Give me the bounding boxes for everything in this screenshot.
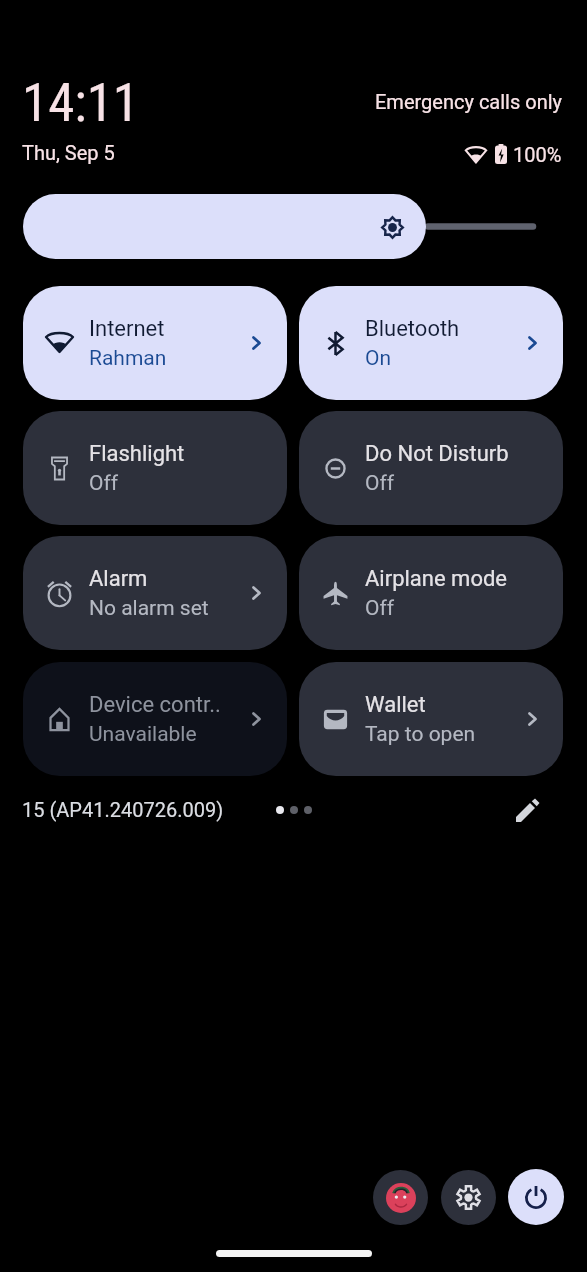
button[interactable]: Do Not Disturb bbox=[299, 411, 563, 525]
staticText: Flashlight bbox=[89, 441, 267, 467]
staticText: Off bbox=[365, 471, 543, 496]
button[interactable]: Brightness bbox=[23, 194, 426, 259]
button[interactable]: Airplane mode bbox=[299, 536, 563, 650]
staticText: Thu, Sep 5 bbox=[22, 141, 115, 164]
button[interactable]: User profile bbox=[373, 1170, 428, 1225]
button[interactable]: Settings bbox=[441, 1170, 496, 1225]
staticText: Rahman bbox=[89, 346, 267, 371]
staticText: 100% bbox=[513, 143, 562, 165]
button[interactable]: Wallet bbox=[299, 662, 563, 776]
staticText: Tap to open bbox=[365, 722, 543, 747]
button[interactable]: Internet bbox=[23, 286, 287, 400]
staticText: Off bbox=[89, 471, 267, 496]
staticText: 15 (AP41.240726.009) bbox=[22, 798, 224, 821]
button[interactable]: Flashlight bbox=[23, 411, 287, 525]
staticText: On bbox=[365, 346, 543, 371]
staticText: Internet bbox=[89, 316, 267, 342]
staticText: Do Not Disturb bbox=[365, 441, 543, 467]
button[interactable]: Alarm bbox=[23, 536, 287, 650]
staticText: Device contr.. bbox=[89, 692, 267, 718]
button[interactable]: Power bbox=[508, 1169, 564, 1225]
staticText: No alarm set bbox=[89, 596, 267, 621]
staticText: 14:11 bbox=[22, 72, 140, 134]
staticText: Bluetooth bbox=[365, 316, 543, 342]
staticText: Unavailable bbox=[89, 722, 267, 747]
staticText: Off bbox=[365, 596, 543, 621]
staticText: Alarm bbox=[89, 566, 267, 592]
staticText: Emergency calls only bbox=[375, 90, 563, 113]
button[interactable]: Device contr.. bbox=[23, 662, 287, 776]
staticText: Wallet bbox=[365, 692, 543, 718]
button[interactable]: Edit tiles bbox=[503, 786, 551, 834]
button[interactable]: Bluetooth bbox=[299, 286, 563, 400]
staticText: Airplane mode bbox=[365, 566, 543, 592]
